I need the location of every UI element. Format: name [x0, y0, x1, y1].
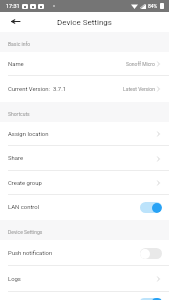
button[interactable]: Back [6, 13, 24, 31]
staticText: Sonoff Micro [126, 61, 155, 67]
button[interactable]: Create group [0, 171, 169, 195]
staticText: Device Settings [57, 18, 112, 27]
staticText: Push notification [8, 250, 53, 257]
staticText: LAN control [8, 204, 40, 211]
staticText: Name [8, 61, 24, 68]
button[interactable]: LAN control [0, 195, 169, 220]
button[interactable] [0, 292, 169, 300]
staticText: Share [8, 155, 24, 162]
staticText: Basic info [8, 41, 31, 47]
staticText: Assign location [8, 131, 49, 138]
staticText: 17:31 [6, 3, 20, 9]
staticText: Shortcuts [8, 111, 30, 117]
staticText: 84% [148, 3, 158, 9]
staticText: Device Settings [8, 229, 43, 235]
staticText: Latest Version [123, 86, 155, 92]
button[interactable]: Name [0, 52, 169, 76]
button[interactable]: Assign location [0, 122, 169, 146]
staticText: Logs [8, 276, 21, 283]
button[interactable]: Push notification [0, 240, 169, 266]
button[interactable]: Current Version: 3.7.1 [0, 76, 169, 102]
staticText: Create group [8, 180, 42, 187]
button[interactable]: Logs [0, 266, 169, 292]
staticText: Current Version: 3.7.1 [8, 86, 66, 93]
button[interactable]: Share [0, 146, 169, 171]
